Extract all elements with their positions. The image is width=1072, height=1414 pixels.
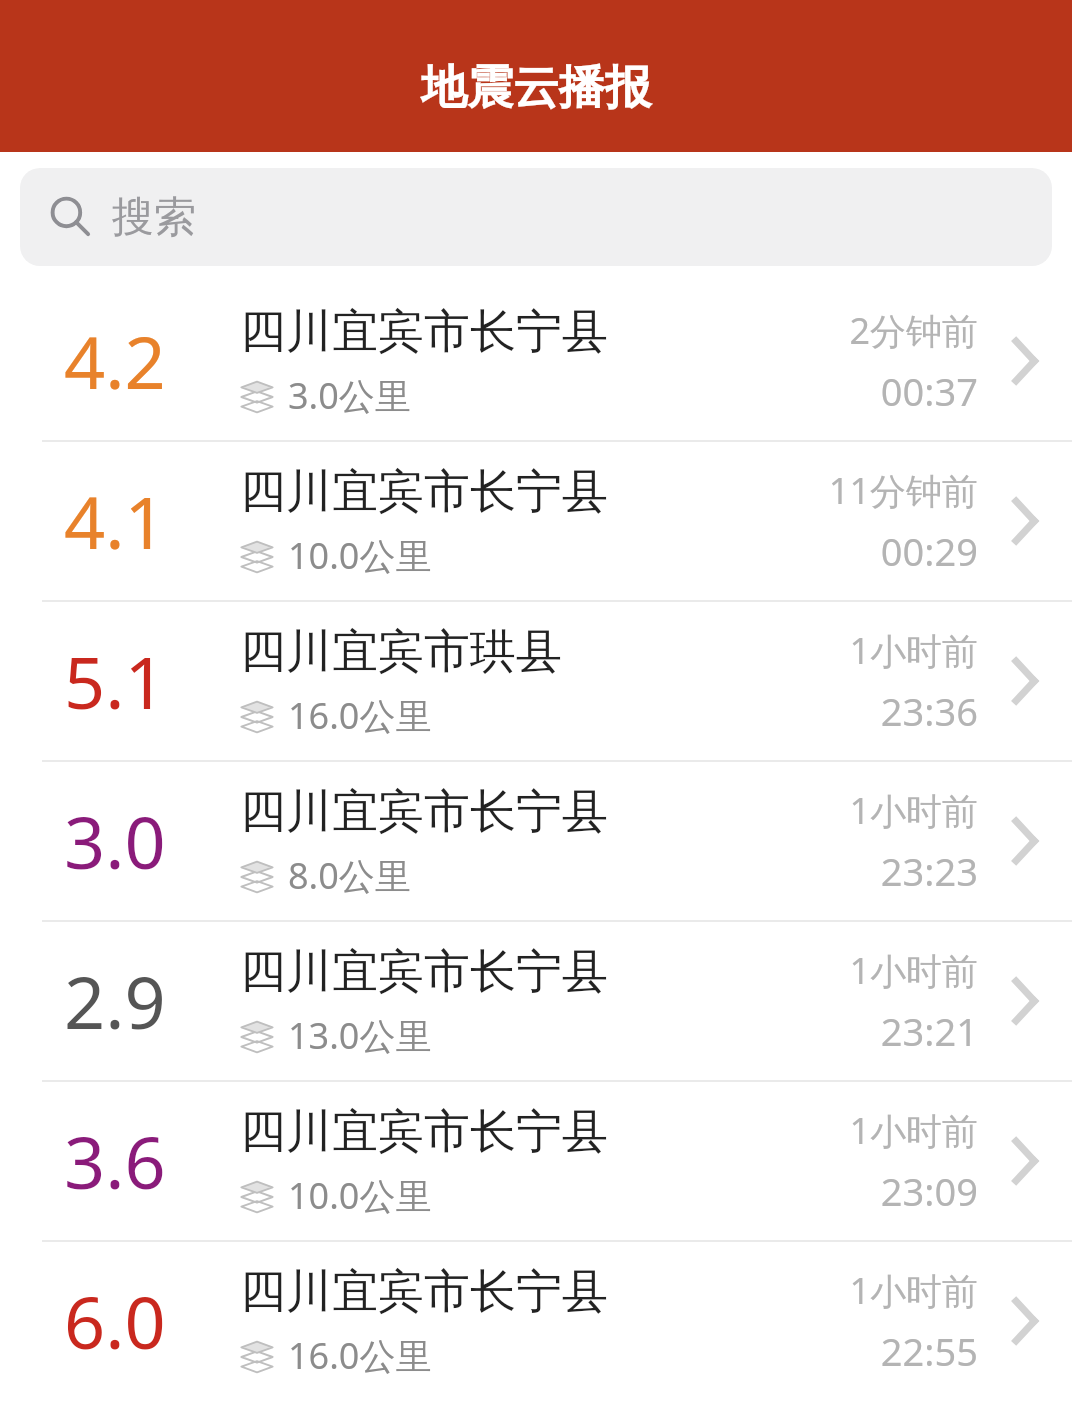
button[interactable]: 搜索 — [20, 168, 1052, 266]
staticText: 6.0 — [64, 1272, 166, 1370]
staticText: 四川宜宾市长宁县 — [240, 943, 608, 1001]
staticText: 00:37 — [880, 365, 978, 417]
staticText: 13.0公里 — [288, 1011, 432, 1060]
staticText: 22:55 — [880, 1325, 978, 1377]
staticText: 4.1 — [64, 472, 166, 570]
staticText: 1小时前 — [849, 786, 978, 835]
staticText: 2.9 — [64, 952, 166, 1050]
staticText: 16.0公里 — [288, 691, 432, 740]
staticText: 3.6 — [64, 1112, 166, 1210]
staticText: 1小时前 — [849, 1266, 978, 1315]
staticText: 四川宜宾市长宁县 — [240, 1263, 608, 1321]
staticText: 3.0 — [64, 792, 166, 890]
staticText: 10.0公里 — [288, 1171, 432, 1220]
staticText: 1小时前 — [849, 1106, 978, 1155]
other: 查看详情 — [1004, 490, 1044, 552]
other: 查看详情 — [1004, 1130, 1044, 1192]
staticText: 1小时前 — [849, 946, 978, 995]
other: 查看详情 — [1004, 810, 1044, 872]
staticText: 四川宜宾市长宁县 — [240, 783, 608, 841]
button[interactable]: 5.1 — [0, 602, 1072, 760]
staticText: 16.0公里 — [288, 1331, 432, 1380]
button[interactable]: 4.1 — [0, 442, 1072, 600]
staticText: 23:36 — [880, 685, 978, 737]
staticText: 5.1 — [64, 632, 166, 730]
button[interactable]: 3.6 — [0, 1082, 1072, 1240]
staticText: 地震云播报 — [421, 59, 651, 117]
staticText: 1小时前 — [849, 626, 978, 675]
staticText: 23:21 — [880, 1005, 978, 1057]
button[interactable]: 6.0 — [0, 1242, 1072, 1400]
other: 查看详情 — [1004, 1290, 1044, 1352]
staticText: 23:23 — [880, 845, 978, 897]
staticText: 2分钟前 — [849, 306, 978, 355]
staticText: 4.2 — [64, 312, 166, 410]
staticText: 8.0公里 — [288, 851, 411, 900]
button[interactable]: 3.0 — [0, 762, 1072, 920]
staticText: 搜索 — [112, 191, 196, 244]
button[interactable]: 4.2 — [0, 282, 1072, 440]
other: 查看详情 — [1004, 330, 1044, 392]
other: 查看详情 — [1004, 650, 1044, 712]
staticText: 四川宜宾市长宁县 — [240, 463, 608, 521]
other: 查看详情 — [1004, 970, 1044, 1032]
button[interactable]: 2.9 — [0, 922, 1072, 1080]
staticText: 00:29 — [880, 525, 978, 577]
staticText: 四川宜宾市长宁县 — [240, 303, 608, 361]
staticText: 11分钟前 — [828, 466, 978, 515]
staticText: 四川宜宾市长宁县 — [240, 1103, 608, 1161]
staticText: 3.0公里 — [288, 371, 411, 420]
staticText: 23:09 — [880, 1165, 978, 1217]
staticText: 四川宜宾市珙县 — [240, 623, 562, 681]
staticText: 10.0公里 — [288, 531, 432, 580]
